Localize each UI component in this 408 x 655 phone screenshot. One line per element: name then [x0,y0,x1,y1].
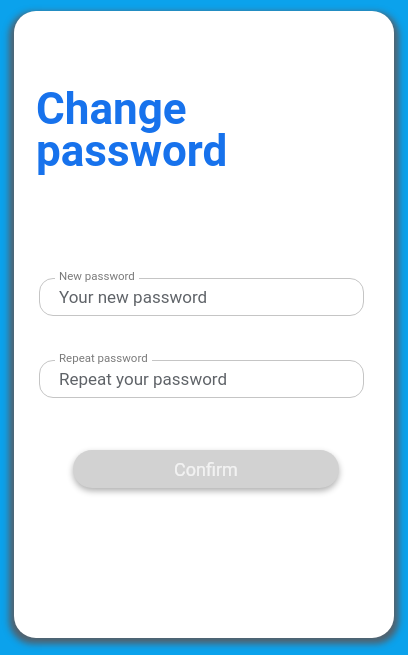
staticText: Repeat password [59,351,148,364]
button[interactable]: Your new password [39,278,364,316]
staticText: Confirm [174,459,238,480]
staticText: Change password [36,83,228,177]
button[interactable]: Confirm [73,450,339,488]
button[interactable]: Repeat your password [39,360,364,398]
staticText: Your new password [59,287,208,307]
staticText: New password [59,269,135,282]
staticText: Repeat your password [59,369,228,389]
